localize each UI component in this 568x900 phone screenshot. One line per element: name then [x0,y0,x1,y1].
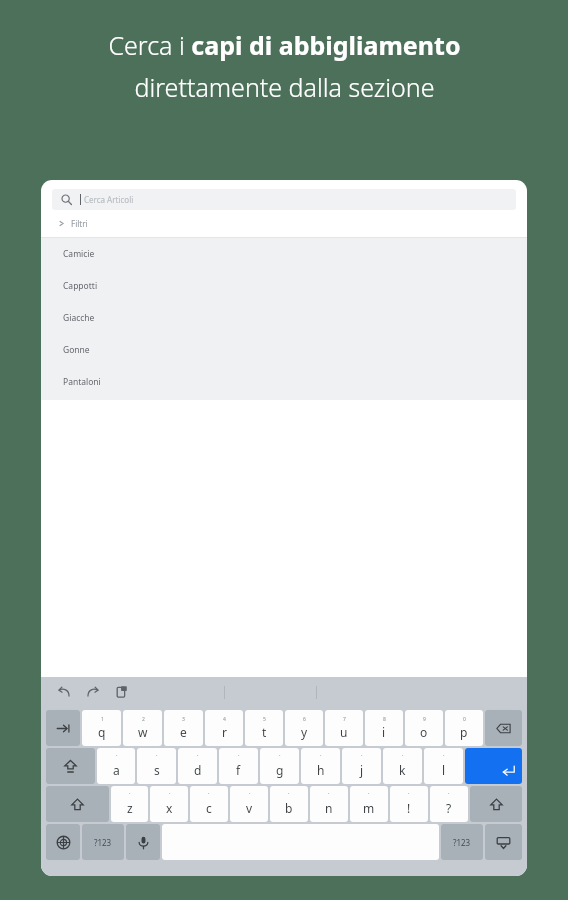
staticText: ` [402,754,404,761]
staticText: Cerca Articoli [84,194,134,205]
staticText: Giacche [63,312,95,324]
staticText: ` [129,792,131,799]
staticText: Pantaloni [63,376,101,388]
button[interactable]: ` [137,748,176,784]
button[interactable]: 0 [445,710,483,746]
staticText: a [113,762,120,778]
staticText: ` [116,754,118,761]
staticText: ` [238,754,240,761]
button[interactable]: 6 [285,710,323,746]
button[interactable]: Tab [46,710,80,746]
button[interactable]: Cerca Articoli [52,189,516,210]
button[interactable]: ?123 [441,824,483,860]
staticText: ` [279,754,281,761]
staticText: u [340,724,348,740]
button[interactable]: Change keyboard [46,824,80,860]
staticText: ` [156,754,158,761]
staticText: Gonne [63,344,90,356]
button[interactable]: Shift [470,786,522,822]
staticText: e [180,724,187,740]
button[interactable]: 3 [164,710,203,746]
staticText: k [399,762,406,778]
staticText: ` [448,792,450,799]
staticText: 3 [182,716,185,723]
staticText: l [442,762,446,778]
staticText: ?123 [94,837,112,848]
button[interactable]: Gonne [41,334,527,366]
button[interactable]: Caps lock [46,748,95,784]
button[interactable]: 5 [245,710,283,746]
button[interactable]: ` [270,786,308,822]
staticText: d [194,762,202,778]
button[interactable]: ` [111,786,148,822]
staticText: 7 [343,716,346,723]
button[interactable]: ` [219,748,258,784]
staticText: ` [197,754,199,761]
button[interactable]: ` [230,786,268,822]
button[interactable]: 9 [405,710,443,746]
button[interactable]: 1 [82,710,121,746]
staticText: r [222,724,227,740]
button[interactable]: Hide keyboard [485,824,522,860]
staticText: ` [328,792,330,799]
staticText: f [236,762,241,778]
button[interactable]: ` [390,786,428,822]
button[interactable]: Pantaloni [41,366,527,398]
button[interactable]: 8 [365,710,403,746]
button[interactable]: ?123 [82,824,124,860]
button[interactable]: ` [150,786,188,822]
button[interactable]: Voice input [126,824,160,860]
staticText: t [262,724,267,740]
staticText: ` [249,792,251,799]
staticText: v [246,800,253,816]
staticText: o [420,724,428,740]
staticText: 1 [101,716,104,723]
button[interactable]: Shift [46,786,109,822]
button[interactable]: ` [190,786,228,822]
staticText: ` [208,792,210,799]
button[interactable]: 4 [205,710,243,746]
button[interactable]: ` [301,748,340,784]
staticText: ` [288,792,290,799]
staticText: ` [169,792,171,799]
button[interactable]: Giacche [41,302,527,334]
staticText: b [285,800,293,816]
staticText: z [127,800,133,816]
staticText: 9 [423,716,426,723]
staticText: n [325,800,333,816]
button[interactable]: ` [383,748,422,784]
staticText: x [166,800,173,816]
staticText: 2 [142,716,145,723]
staticText: ` [361,754,363,761]
button[interactable]: Camicie [41,238,527,270]
staticText: ` [443,754,445,761]
staticText: s [154,762,160,778]
staticText: i [382,724,386,740]
staticText: h [317,762,325,778]
staticText: m [363,800,375,816]
button[interactable]: ` [97,748,135,784]
button[interactable]: ` [310,786,348,822]
button[interactable]: Clipboard [112,682,132,702]
button[interactable]: Backspace [485,710,522,746]
button[interactable]: Enter [465,748,522,784]
staticText: c [206,800,212,816]
button[interactable]: ` [430,786,468,822]
button[interactable]: ` [424,748,463,784]
button[interactable]: Redo [83,682,103,702]
button[interactable]: ` [342,748,381,784]
button[interactable]: ` [260,748,299,784]
button[interactable]: 7 [325,710,363,746]
staticText: g [276,762,284,778]
staticText: ` [320,754,322,761]
button[interactable]: ` [178,748,217,784]
button[interactable]: Filtri [41,210,527,237]
button[interactable]: ` [350,786,388,822]
staticText: ` [368,792,370,799]
button[interactable]: 2 [123,710,162,746]
button[interactable]: Cappotti [41,270,527,302]
staticText: ? [446,800,452,816]
button[interactable]: Undo [54,682,74,702]
staticText: 5 [263,716,266,723]
